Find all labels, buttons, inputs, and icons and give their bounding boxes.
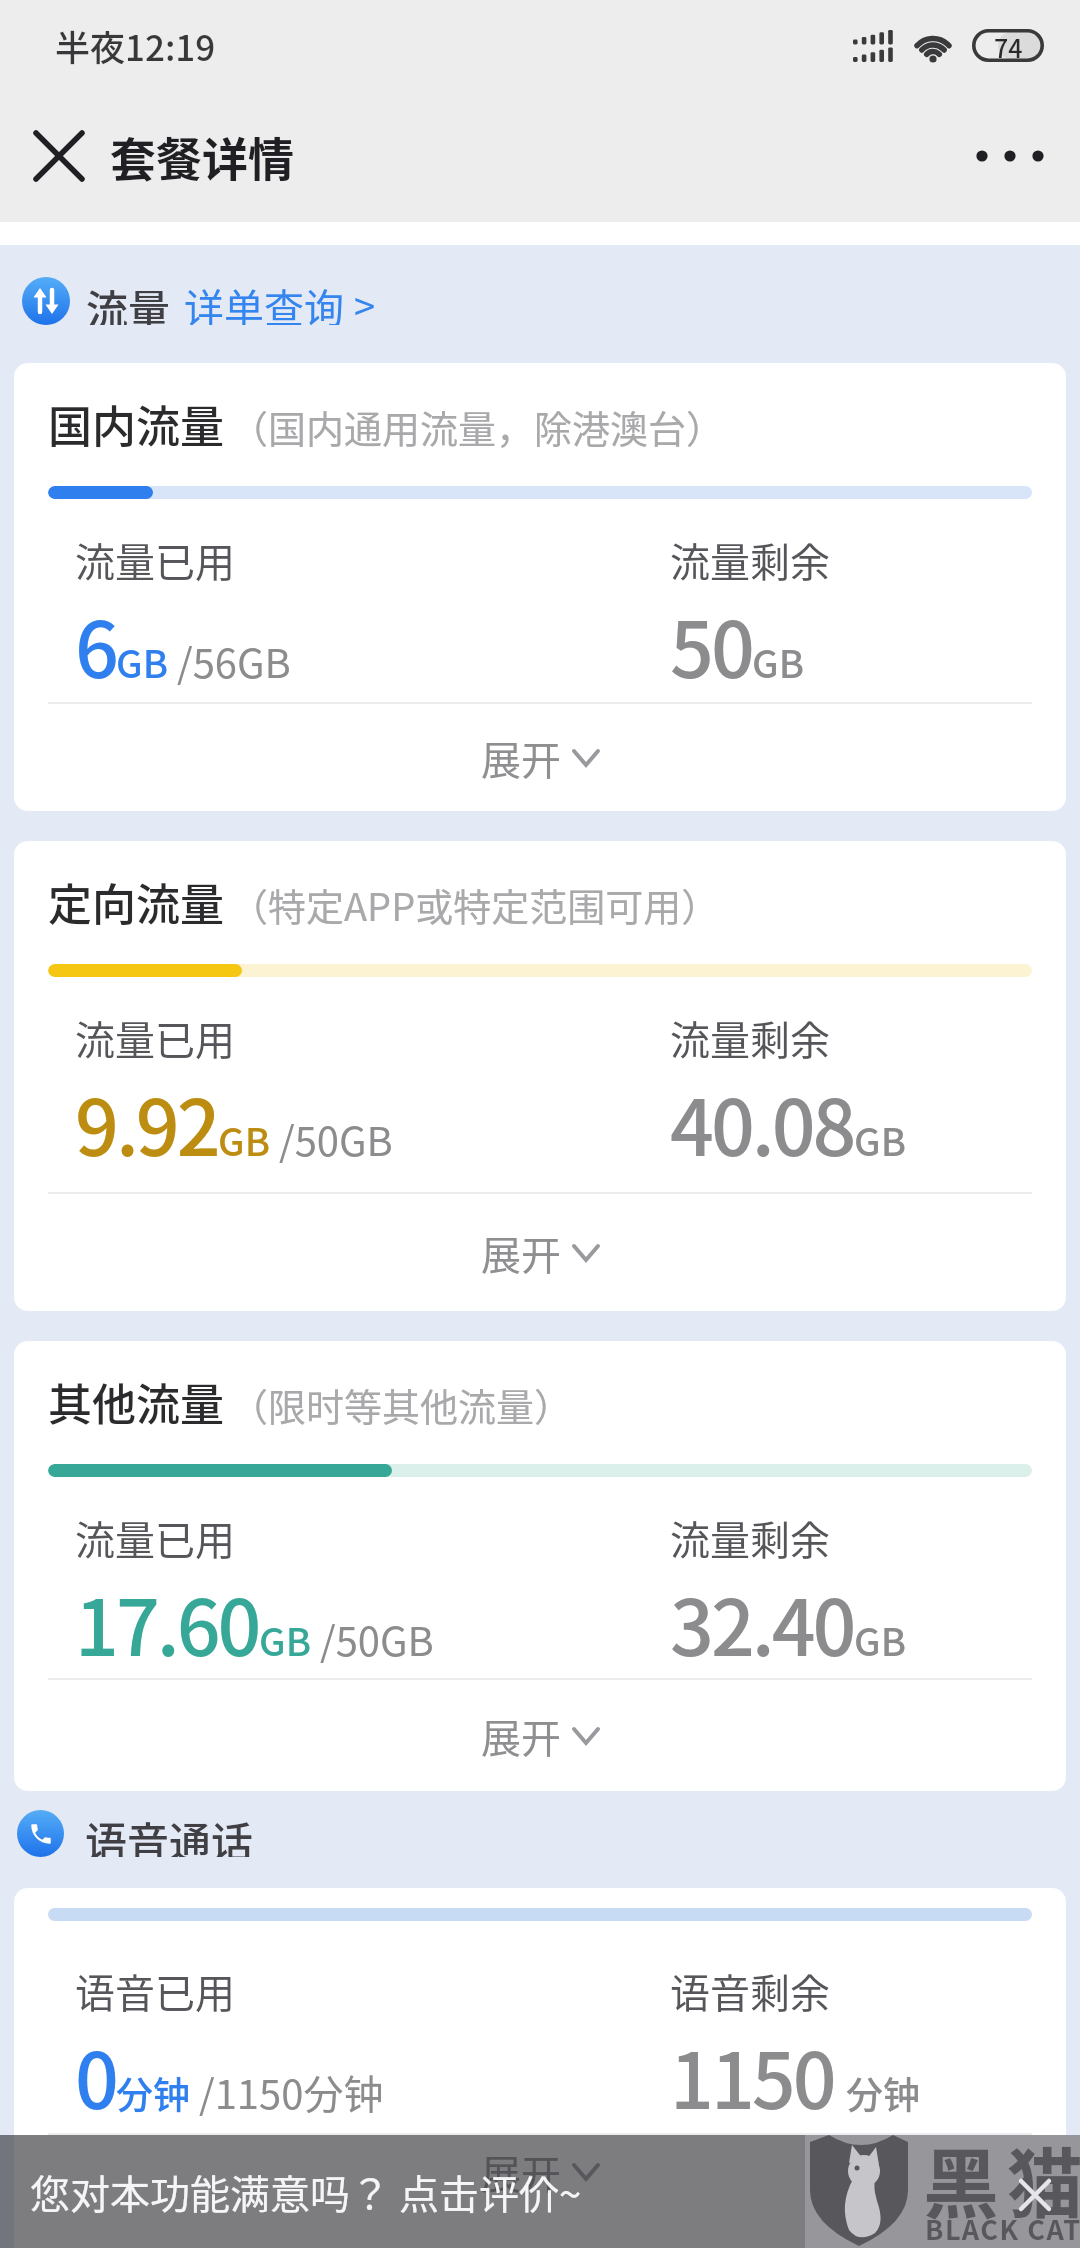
staticText: GB bbox=[752, 634, 804, 689]
staticText: 1150 bbox=[670, 2020, 834, 2131]
staticText: 分钟 bbox=[116, 2066, 190, 2120]
staticText: GB bbox=[259, 1612, 311, 1667]
staticText: 流量剩余 bbox=[670, 1009, 830, 1067]
staticText: 50 bbox=[670, 589, 752, 700]
button[interactable]: 展开 bbox=[481, 729, 599, 787]
staticText: 分钟 bbox=[846, 2066, 920, 2120]
button[interactable] bbox=[968, 126, 1052, 186]
staticText: GB bbox=[854, 1112, 906, 1167]
button[interactable]: 您对本功能满意吗？ 点击评价~ bbox=[0, 2135, 1080, 2248]
staticText: 语音剩余 bbox=[670, 1962, 830, 2020]
staticText: 展开 bbox=[481, 2143, 561, 2201]
staticText: 17.60 bbox=[75, 1567, 259, 1678]
staticText: /1150分钟 bbox=[190, 2063, 384, 2121]
button[interactable] bbox=[26, 123, 92, 189]
button[interactable]: 展开 bbox=[481, 1707, 599, 1765]
button[interactable]: 详单查询 bbox=[184, 277, 376, 325]
staticText: 流量剩余 bbox=[670, 531, 830, 589]
staticText: GB bbox=[116, 634, 168, 689]
staticText: 展开 bbox=[481, 729, 561, 787]
staticText: GB bbox=[854, 1612, 906, 1667]
staticText: /50GB bbox=[270, 1110, 393, 1168]
staticText: 32.40 bbox=[670, 1567, 854, 1678]
staticText: 74 bbox=[994, 29, 1023, 62]
staticText: BLACK CAT bbox=[925, 2209, 1080, 2248]
staticText: 流量 bbox=[86, 277, 171, 325]
staticText: 流量已用 bbox=[75, 1009, 235, 1067]
staticText: 流量已用 bbox=[75, 531, 235, 589]
staticText: /50GB bbox=[311, 1610, 434, 1668]
staticText: 语音通话 bbox=[85, 1809, 254, 1857]
button[interactable]: 展开 bbox=[481, 2143, 599, 2201]
staticText: 40.08 bbox=[670, 1067, 854, 1178]
staticText: 展开 bbox=[481, 1707, 561, 1765]
staticText: 语音已用 bbox=[75, 1962, 235, 2020]
staticText: /56GB bbox=[168, 632, 291, 690]
staticText: 详单查询 bbox=[184, 277, 344, 325]
staticText: 您对本功能满意吗？ 点击评价~ bbox=[30, 2163, 582, 2221]
staticText: 套餐详情 bbox=[110, 123, 294, 190]
staticText: 展开 bbox=[481, 1224, 561, 1282]
staticText: 黑猫 bbox=[923, 2124, 1080, 2234]
staticText: 半夜12:19 bbox=[55, 20, 216, 71]
staticText: > bbox=[354, 277, 376, 325]
button[interactable]: 展开 bbox=[481, 1224, 599, 1282]
staticText: （国内通用流量，除港澳台） bbox=[230, 399, 725, 454]
staticText: 定向流量 bbox=[48, 870, 224, 934]
staticText: 流量已用 bbox=[75, 1509, 235, 1567]
staticText: 6 bbox=[75, 589, 116, 700]
staticText: （限时等其他流量） bbox=[230, 1377, 573, 1432]
staticText: 其他流量 bbox=[48, 1370, 224, 1434]
staticText: （特定APP或特定范围可用） bbox=[230, 877, 720, 932]
staticText: 0 bbox=[75, 2020, 116, 2131]
staticText: 国内流量 bbox=[48, 392, 224, 456]
staticText: 流量剩余 bbox=[670, 1509, 830, 1567]
staticText: GB bbox=[218, 1112, 270, 1167]
staticText: 9.92 bbox=[75, 1067, 218, 1178]
